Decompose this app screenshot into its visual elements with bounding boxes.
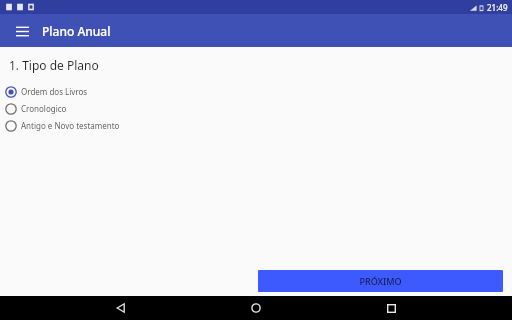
button[interactable]: Open navigation menu (12, 21, 32, 41)
button[interactable]: Cronologico (0, 100, 512, 117)
staticText: 21:49 (487, 2, 508, 13)
button[interactable]: PRÓXIMO (258, 270, 503, 292)
button[interactable]: Back (107, 296, 135, 320)
staticText: 1. Tipo de Plano (9, 57, 99, 73)
button[interactable]: Antigo e Novo testamento (0, 117, 512, 134)
staticText: PRÓXIMO (359, 275, 402, 287)
staticText: Antigo e Novo testamento (21, 120, 120, 131)
button[interactable]: Recent apps (377, 296, 405, 320)
button[interactable]: Home (242, 296, 270, 320)
button[interactable]: Ordem dos Livros (0, 83, 512, 100)
staticText: Plano Anual (42, 23, 111, 39)
staticText: Cronologico (21, 103, 67, 114)
staticText: Ordem dos Livros (21, 86, 88, 97)
